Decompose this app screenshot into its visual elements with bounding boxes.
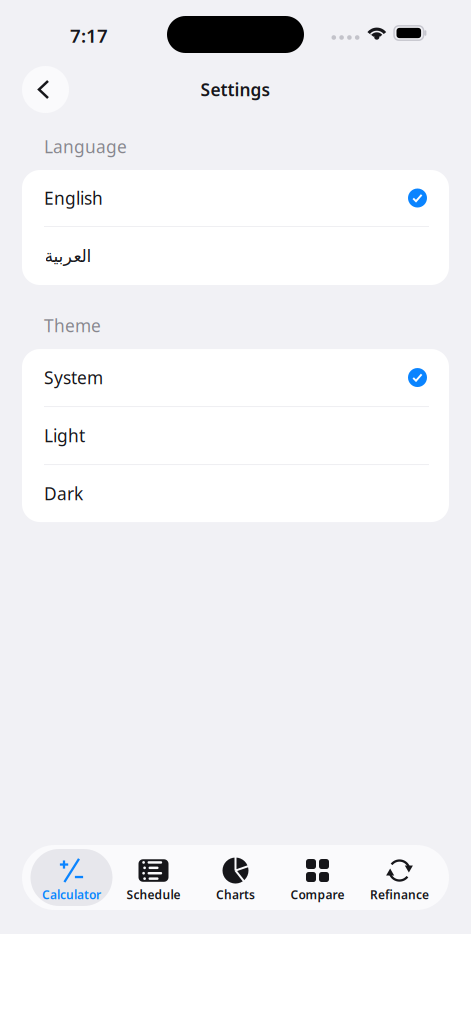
staticText: Refinance: [370, 886, 429, 902]
button[interactable]: Back: [22, 66, 69, 113]
staticText: English: [44, 186, 103, 209]
staticText: System: [44, 366, 103, 389]
button[interactable]: Schedule: [112, 849, 194, 906]
button[interactable]: العربية: [22, 227, 449, 285]
staticText: Compare: [290, 886, 344, 902]
button[interactable]: Dark: [22, 465, 449, 522]
staticText: Charts: [216, 886, 255, 902]
button[interactable]: System: [22, 349, 449, 407]
staticText: Light: [44, 424, 85, 447]
staticText: Calculator: [42, 886, 101, 902]
staticText: Theme: [44, 314, 101, 337]
staticText: العربية: [44, 246, 91, 266]
button[interactable]: Refinance: [358, 849, 440, 906]
button[interactable]: Light: [22, 407, 449, 465]
staticText: Schedule: [126, 886, 180, 902]
button[interactable]: Compare: [276, 849, 358, 906]
button[interactable]: English: [22, 170, 449, 227]
staticText: Dark: [44, 482, 83, 505]
staticText: 7:17: [70, 23, 108, 48]
staticText: Language: [44, 135, 127, 158]
staticText: Settings: [200, 78, 270, 101]
button[interactable]: Calculator: [30, 849, 112, 906]
button[interactable]: Charts: [194, 849, 276, 906]
